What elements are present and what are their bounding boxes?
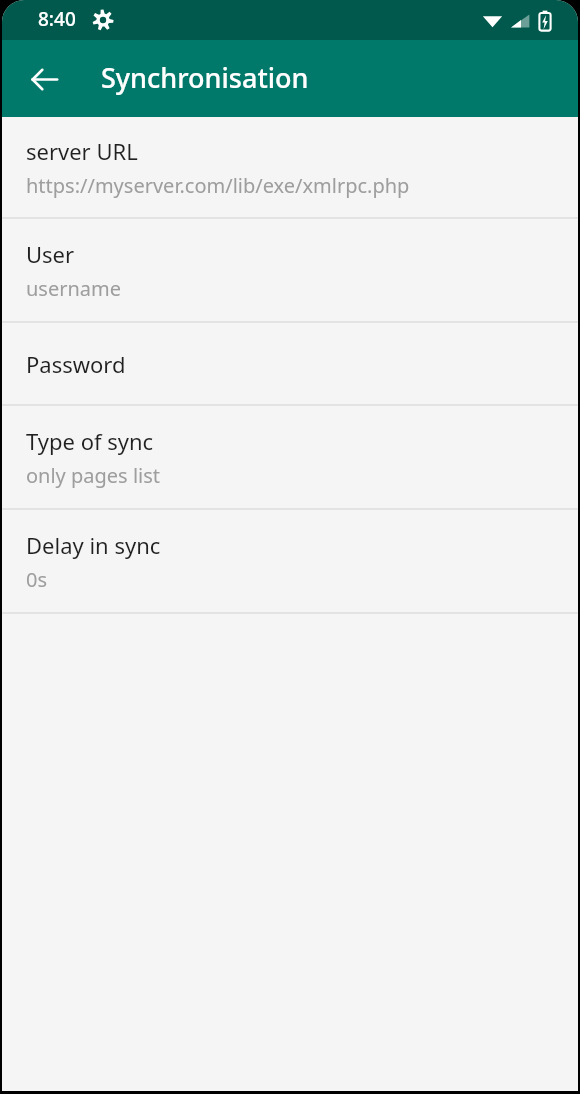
button[interactable]: server URL [2, 117, 578, 217]
staticText: 0s [26, 566, 48, 593]
button[interactable]: Password [2, 323, 578, 404]
staticText: Password [26, 349, 126, 379]
button[interactable]: User [2, 219, 578, 321]
button[interactable]: Type of sync [2, 406, 578, 508]
staticText: Type of sync [26, 426, 154, 456]
staticText: username [26, 275, 122, 302]
staticText: only pages list [26, 462, 161, 489]
staticText: Synchronisation [101, 59, 309, 96]
button[interactable]: Delay in sync [2, 510, 578, 612]
staticText: 8:40 [38, 6, 76, 32]
staticText: Delay in sync [26, 530, 161, 560]
staticText: https://myserver.com/lib/exe/xmlrpc.php [26, 172, 410, 199]
staticText: User [26, 239, 75, 269]
button[interactable]: Back [16, 51, 72, 107]
staticText: server URL [26, 136, 138, 166]
